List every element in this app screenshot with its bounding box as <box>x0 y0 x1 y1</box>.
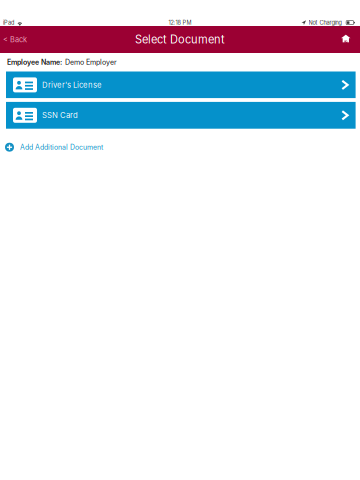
button[interactable]: < Back <box>0 30 33 49</box>
staticText: Add Additional Document <box>20 143 103 151</box>
staticText: 12:18 PM <box>168 19 191 26</box>
staticText: < Back <box>3 35 27 44</box>
staticText: Demo Employer <box>65 58 117 66</box>
staticText: SSN Card <box>42 111 78 120</box>
staticText: Not Charging <box>309 19 342 26</box>
button[interactable]: Add Additional Document <box>0 129 360 157</box>
button[interactable]: Driver's License <box>6 71 356 98</box>
button[interactable]: Home <box>335 31 360 48</box>
staticText: Select Document <box>135 33 225 46</box>
staticText: Driver's License <box>42 80 102 90</box>
button[interactable]: SSN Card <box>6 102 356 129</box>
staticText: iPad <box>3 19 14 26</box>
staticText: Employee Name: <box>7 58 62 66</box>
